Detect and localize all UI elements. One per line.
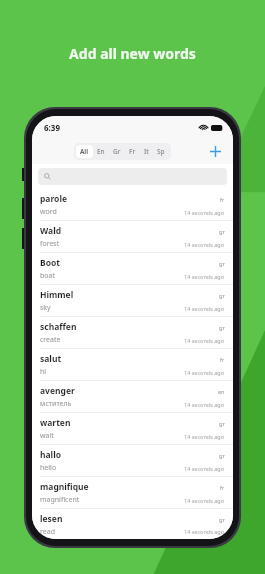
staticText: fr bbox=[220, 356, 225, 363]
button[interactable]: hallo bbox=[32, 445, 233, 476]
staticText: gr bbox=[219, 516, 225, 523]
staticText: 6:39 bbox=[44, 122, 60, 133]
button[interactable]: Fr bbox=[125, 145, 140, 158]
staticText: lesen bbox=[40, 513, 63, 525]
button[interactable]: lesen bbox=[32, 509, 233, 539]
staticText: fr bbox=[220, 484, 225, 491]
button[interactable]: It bbox=[140, 145, 153, 158]
button[interactable]: Boot bbox=[32, 253, 233, 284]
staticText: Boot bbox=[40, 257, 60, 269]
staticText: Himmel bbox=[40, 289, 74, 301]
button[interactable]: Search bbox=[38, 168, 227, 185]
button[interactable]: Sp bbox=[153, 145, 169, 158]
staticText: 14 seconds ago bbox=[184, 305, 225, 312]
staticText: Add all new words bbox=[0, 44, 265, 63]
staticText: 14 seconds ago bbox=[184, 273, 225, 280]
staticText: gr bbox=[219, 324, 225, 331]
staticText: read bbox=[40, 527, 55, 536]
staticText: warten bbox=[40, 417, 71, 429]
button[interactable]: Wald bbox=[32, 221, 233, 252]
staticText: En bbox=[97, 147, 105, 156]
staticText: word bbox=[40, 207, 57, 217]
staticText: forest bbox=[40, 239, 60, 249]
staticText: avenger bbox=[40, 385, 75, 397]
staticText: create bbox=[40, 335, 61, 345]
staticText: Gr bbox=[113, 147, 121, 156]
button[interactable]: parole bbox=[32, 189, 233, 220]
staticText: boat bbox=[40, 271, 55, 281]
button[interactable]: salut bbox=[32, 349, 233, 380]
staticText: 14 seconds ago bbox=[184, 241, 225, 248]
staticText: hallo bbox=[40, 449, 61, 461]
staticText: 14 seconds ago bbox=[184, 337, 225, 344]
staticText: wait bbox=[40, 431, 54, 441]
staticText: gr bbox=[219, 228, 225, 235]
staticText: sky bbox=[40, 303, 51, 313]
staticText: magnificent bbox=[40, 495, 80, 505]
button[interactable]: avenger bbox=[32, 381, 233, 412]
staticText: gr bbox=[219, 452, 225, 459]
staticText: 14 seconds ago bbox=[184, 209, 225, 216]
staticText: hello bbox=[40, 463, 57, 473]
button[interactable]: magnifique bbox=[32, 477, 233, 508]
staticText: 14 seconds ago bbox=[184, 465, 225, 472]
staticText: en bbox=[218, 388, 225, 395]
staticText: gr bbox=[219, 420, 225, 427]
staticText: gr bbox=[219, 292, 225, 299]
staticText: Sp bbox=[157, 147, 165, 156]
button[interactable]: Gr bbox=[109, 145, 125, 158]
staticText: мститель bbox=[40, 399, 72, 409]
staticText: Fr bbox=[129, 147, 136, 156]
staticText: salut bbox=[40, 353, 62, 365]
button[interactable]: Himmel bbox=[32, 285, 233, 316]
button[interactable]: warten bbox=[32, 413, 233, 444]
staticText: 14 seconds ago bbox=[184, 433, 225, 440]
button[interactable]: All bbox=[76, 145, 93, 158]
staticText: parole bbox=[40, 193, 68, 205]
staticText: 14 seconds ago bbox=[184, 401, 225, 408]
staticText: gr bbox=[219, 260, 225, 267]
button[interactable]: En bbox=[93, 145, 109, 158]
staticText: Wald bbox=[40, 225, 62, 237]
staticText: It bbox=[144, 147, 149, 156]
staticText: 14 seconds ago bbox=[184, 369, 225, 376]
staticText: schaffen bbox=[40, 321, 77, 333]
staticText: hi bbox=[40, 367, 47, 377]
staticText: 14 seconds ago bbox=[184, 497, 225, 504]
staticText: All bbox=[80, 147, 89, 156]
staticText: magnifique bbox=[40, 481, 89, 493]
staticText: fr bbox=[220, 196, 225, 203]
staticText: 14 seconds ago bbox=[184, 528, 225, 535]
button[interactable]: Add word bbox=[205, 141, 225, 161]
button[interactable]: schaffen bbox=[32, 317, 233, 348]
